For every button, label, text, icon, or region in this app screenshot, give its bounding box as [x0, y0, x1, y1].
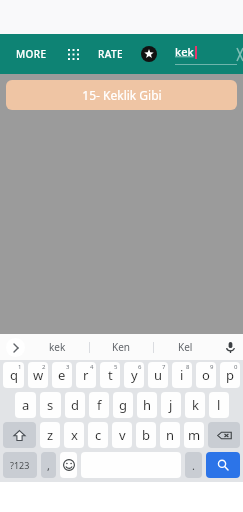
staticText: k	[192, 396, 199, 414]
staticText: c	[95, 426, 102, 444]
button[interactable]: o	[196, 362, 216, 388]
button[interactable]: h	[137, 392, 157, 418]
button[interactable]: Apps grid	[62, 43, 84, 65]
staticText: 0	[234, 363, 238, 371]
button[interactable]: Ken	[90, 334, 153, 360]
button[interactable]: v	[112, 422, 132, 448]
button[interactable]: j	[161, 392, 181, 418]
staticText: Kel	[178, 340, 193, 354]
button[interactable]: g	[113, 392, 133, 418]
button[interactable]: Emoji	[60, 452, 77, 478]
staticText: h	[143, 396, 152, 414]
button[interactable]: i	[172, 362, 192, 388]
button[interactable]: r	[76, 362, 96, 388]
button[interactable]: k	[185, 392, 205, 418]
staticText: z	[47, 426, 54, 444]
staticText: 3	[66, 363, 70, 371]
staticText: i	[180, 366, 184, 384]
button[interactable]: Shift	[3, 422, 36, 448]
staticText: o	[202, 366, 210, 384]
staticText: g	[119, 396, 127, 414]
button[interactable]: Favorite	[137, 42, 161, 66]
staticText: ,	[47, 458, 50, 473]
button[interactable]: Search	[206, 452, 240, 478]
staticText: 15- Keklik Gibi	[82, 87, 162, 103]
staticText: p	[226, 366, 234, 384]
button[interactable]: y	[124, 362, 144, 388]
staticText: a	[22, 396, 30, 414]
button[interactable]: a	[15, 392, 36, 418]
button[interactable]: kek	[25, 334, 89, 360]
button[interactable]: e	[52, 362, 72, 388]
button[interactable]: Clear search	[237, 39, 243, 69]
button[interactable]: l	[209, 392, 229, 418]
button[interactable]: x	[64, 422, 84, 448]
staticText: 4	[90, 363, 94, 371]
staticText: kek	[49, 340, 66, 354]
button[interactable]: q	[3, 362, 24, 388]
button[interactable]: b	[136, 422, 156, 448]
button[interactable]: t	[100, 362, 120, 388]
staticText: ?123	[10, 459, 30, 471]
staticText: 9	[210, 363, 214, 371]
staticText: RATE	[98, 47, 123, 61]
staticText: b	[142, 426, 150, 444]
staticText: u	[154, 366, 163, 384]
button[interactable]: .	[185, 452, 202, 478]
button[interactable]: u	[148, 362, 168, 388]
staticText: 6	[138, 363, 142, 371]
staticText: r	[83, 366, 89, 384]
button[interactable]: ,	[41, 452, 56, 478]
staticText: j	[169, 396, 173, 414]
staticText: Ken	[112, 340, 131, 354]
button[interactable]: n	[160, 422, 180, 448]
staticText: q	[10, 366, 18, 384]
staticText: v	[119, 426, 126, 444]
button[interactable]: MORE	[14, 41, 49, 67]
button[interactable]: Kel	[154, 334, 217, 360]
staticText: .	[192, 458, 195, 473]
button[interactable]: w	[28, 362, 48, 388]
staticText: e	[58, 366, 66, 384]
button[interactable]: ?123	[3, 452, 37, 478]
button[interactable]: s	[40, 392, 61, 418]
staticText: 5	[114, 363, 118, 371]
button[interactable]: 15- Keklik Gibi	[6, 80, 237, 110]
button[interactable]: Expand toolbar	[6, 338, 25, 357]
button[interactable]: m	[184, 422, 204, 448]
staticText: d	[71, 396, 79, 414]
button[interactable]: RATE	[96, 41, 125, 67]
staticText: n	[166, 426, 175, 444]
button[interactable]: Voice input	[217, 334, 243, 360]
button[interactable]: c	[88, 422, 108, 448]
staticText: s	[47, 396, 54, 414]
staticText: t	[108, 366, 113, 384]
staticText: kek	[175, 44, 194, 59]
button[interactable]: z	[40, 422, 60, 448]
button[interactable]: p	[220, 362, 240, 388]
staticText: w	[33, 366, 44, 384]
button[interactable]: d	[65, 392, 85, 418]
button[interactable]: f	[89, 392, 109, 418]
staticText: 8	[186, 363, 190, 371]
button[interactable]: Backspace	[208, 422, 240, 448]
staticText: 1	[18, 363, 22, 371]
staticText: MORE	[16, 47, 47, 61]
staticText: l	[217, 396, 221, 414]
staticText: m	[188, 426, 201, 444]
staticText: y	[131, 366, 138, 384]
staticText: f	[97, 396, 102, 414]
staticText: 2	[42, 363, 46, 371]
staticText: x	[71, 426, 78, 444]
staticText: 7	[162, 363, 166, 371]
